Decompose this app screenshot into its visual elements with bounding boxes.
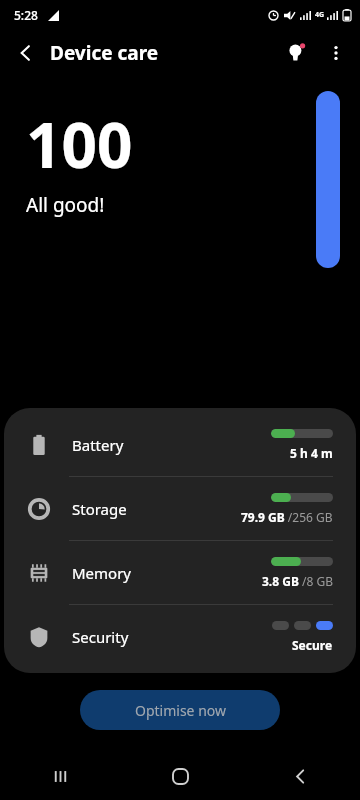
staticText: 5:28 — [14, 7, 38, 23]
button[interactable]: Security — [4, 605, 356, 668]
staticText: Optimise now — [135, 701, 226, 720]
staticText: All good! — [26, 192, 105, 218]
staticText: 100 — [26, 102, 133, 186]
button[interactable]: Recents — [0, 752, 120, 800]
button[interactable]: Memory — [4, 541, 356, 604]
staticText: Security — [72, 627, 129, 647]
button[interactable]: More options — [316, 33, 356, 73]
button[interactable]: Optimise now — [80, 690, 280, 730]
button[interactable]: Storage — [4, 477, 356, 540]
staticText: Device care — [50, 40, 159, 66]
button[interactable]: Back — [6, 33, 46, 73]
staticText: Memory — [72, 563, 132, 583]
button[interactable]: Battery — [4, 413, 356, 476]
button[interactable]: Home — [120, 752, 240, 800]
button[interactable]: Tips — [276, 33, 316, 73]
staticText: Storage — [72, 499, 127, 519]
button[interactable]: Back — [240, 752, 360, 800]
staticText: 3.8 GB /8 GB — [262, 573, 333, 589]
staticText: 79.9 GB /256 GB — [241, 509, 333, 525]
staticText: Secure — [292, 637, 333, 653]
staticText: 5 h 4 m — [290, 445, 333, 461]
staticText: Battery — [72, 435, 124, 455]
staticText: 4G — [315, 10, 325, 20]
